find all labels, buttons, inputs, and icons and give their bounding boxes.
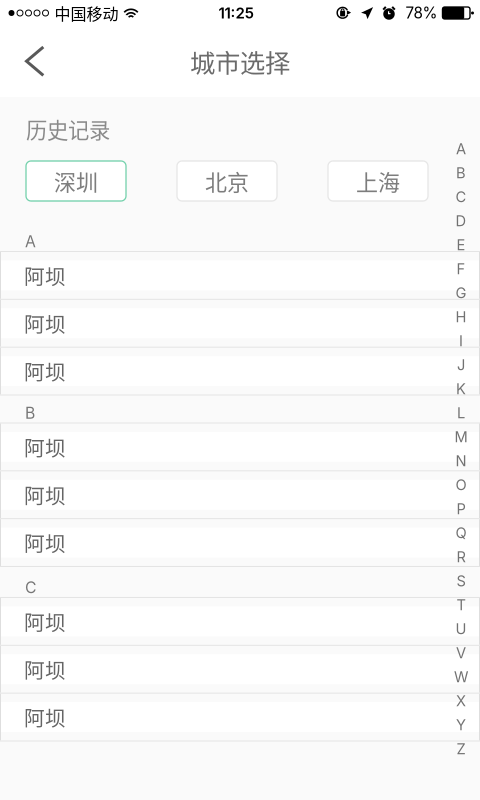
button[interactable]: 阿坝	[0, 423, 480, 470]
button[interactable]: A	[446, 137, 476, 161]
button[interactable]: L	[446, 401, 476, 425]
staticText: D	[455, 212, 466, 230]
staticText: N	[455, 452, 466, 470]
staticText: 阿坝	[24, 606, 66, 636]
staticText: 历史记录	[26, 114, 110, 144]
button[interactable]: O	[446, 473, 476, 497]
staticText: 78%	[405, 4, 437, 22]
staticText: B	[25, 403, 35, 422]
button[interactable]: 阿坝	[0, 300, 480, 347]
button[interactable]: F	[446, 257, 476, 281]
staticText: X	[456, 692, 466, 710]
button[interactable]: C	[446, 185, 476, 209]
staticText: 上海	[356, 165, 400, 197]
button[interactable]: J	[446, 353, 476, 377]
staticText: C	[25, 578, 36, 597]
button[interactable]: G	[446, 281, 476, 305]
button[interactable]: X	[446, 689, 476, 713]
staticText: Z	[456, 740, 465, 758]
button[interactable]: U	[446, 617, 476, 641]
staticText: 阿坝	[24, 432, 66, 462]
staticText: 阿坝	[24, 702, 66, 732]
button[interactable]: I	[446, 329, 476, 353]
staticText: M	[454, 428, 467, 446]
button[interactable]: K	[446, 377, 476, 401]
button[interactable]: 阿坝	[0, 694, 480, 740]
staticText: 城市选择	[190, 43, 290, 80]
button[interactable]: N	[446, 449, 476, 473]
button[interactable]: Back	[0, 26, 61, 96]
button[interactable]: 阿坝	[0, 598, 480, 645]
button[interactable]: W	[446, 665, 476, 689]
button[interactable]: T	[446, 593, 476, 617]
button[interactable]: 阿坝	[0, 348, 480, 394]
button[interactable]: D	[446, 209, 476, 233]
staticText: Y	[456, 716, 466, 734]
staticText: 深圳	[54, 165, 98, 197]
staticText: L	[457, 404, 465, 422]
button[interactable]: V	[446, 641, 476, 665]
staticText: F	[456, 260, 465, 278]
staticText: B	[456, 164, 466, 182]
button[interactable]: R	[446, 545, 476, 569]
button[interactable]: 阿坝	[0, 646, 480, 693]
staticText: I	[459, 332, 463, 350]
button[interactable]: Z	[446, 737, 476, 761]
staticText: 11:25	[218, 4, 253, 22]
staticText: A	[456, 140, 466, 158]
staticText: J	[457, 356, 465, 374]
button[interactable]: 阿坝	[0, 252, 480, 299]
button[interactable]: 阿坝	[0, 471, 480, 518]
button[interactable]: 北京	[177, 161, 277, 201]
staticText: O	[455, 476, 466, 494]
button[interactable]: 深圳	[26, 161, 126, 201]
staticText: K	[456, 380, 466, 398]
button[interactable]: 阿坝	[0, 519, 480, 566]
staticText: S	[456, 572, 465, 590]
staticText: 阿坝	[24, 260, 66, 290]
staticText: 中国移动	[54, 1, 118, 25]
staticText: T	[456, 596, 465, 614]
staticText: 北京	[205, 165, 249, 197]
staticText: 阿坝	[24, 480, 66, 510]
staticText: E	[456, 236, 465, 254]
button[interactable]: 上海	[328, 161, 428, 201]
staticText: 阿坝	[24, 308, 66, 338]
button[interactable]: M	[446, 425, 476, 449]
staticText: A	[25, 232, 36, 251]
button[interactable]: S	[446, 569, 476, 593]
staticText: P	[456, 500, 465, 518]
staticText: V	[456, 644, 466, 662]
button[interactable]: H	[446, 305, 476, 329]
button[interactable]: E	[446, 233, 476, 257]
staticText: W	[454, 668, 468, 686]
staticText: G	[455, 284, 466, 302]
button[interactable]: P	[446, 497, 476, 521]
staticText: Q	[455, 524, 466, 542]
staticText: 阿坝	[24, 528, 66, 557]
staticText: 阿坝	[24, 356, 66, 386]
button[interactable]: Q	[446, 521, 476, 545]
staticText: R	[456, 548, 465, 566]
staticText: C	[455, 188, 466, 206]
staticText: H	[455, 308, 466, 326]
staticText: U	[455, 620, 466, 638]
staticText: 阿坝	[24, 654, 66, 684]
button[interactable]: Y	[446, 713, 476, 737]
button[interactable]: B	[446, 161, 476, 185]
